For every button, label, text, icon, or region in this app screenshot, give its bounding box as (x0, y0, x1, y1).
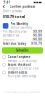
staticText: Secure checkout (8, 63, 31, 66)
staticText: Billed monthly (11, 26, 32, 29)
staticText: By subscribing you agree to our Terms of… (5, 91, 40, 93)
staticText: Estimated tax (3, 34, 19, 37)
staticText: Pro Monthly (11, 22, 28, 26)
staticText: Instant access (8, 71, 27, 74)
staticText: Manage it in Settings (8, 59, 37, 62)
staticText: Discount (3, 38, 15, 41)
staticText: Pro Monthly plan (3, 30, 27, 33)
staticText: Encrypted end to end (8, 67, 39, 70)
button[interactable]: Secure checkout (0, 63, 45, 70)
button[interactable]: Subscribe (2, 47, 43, 54)
staticText: $10.79 total (3, 14, 25, 19)
staticText: Subscribe (16, 49, 29, 52)
button[interactable]: Back (1, 4, 6, 9)
staticText: $9.99 (33, 30, 42, 33)
staticText: $10.79 (31, 42, 42, 45)
button[interactable]: Cancel anytime (0, 55, 45, 63)
staticText: -$0.00 (32, 38, 42, 41)
button[interactable]: Instant access (0, 70, 45, 78)
staticText: Your plan starts today (8, 74, 36, 78)
staticText: Confirm purchase (9, 5, 35, 8)
staticText: Total due today (3, 42, 26, 45)
staticText: Cancel anytime (8, 55, 31, 59)
staticText: 9:41 (3, 1, 10, 4)
staticText: Order summary (3, 9, 22, 13)
staticText: $0.80 (33, 34, 42, 37)
